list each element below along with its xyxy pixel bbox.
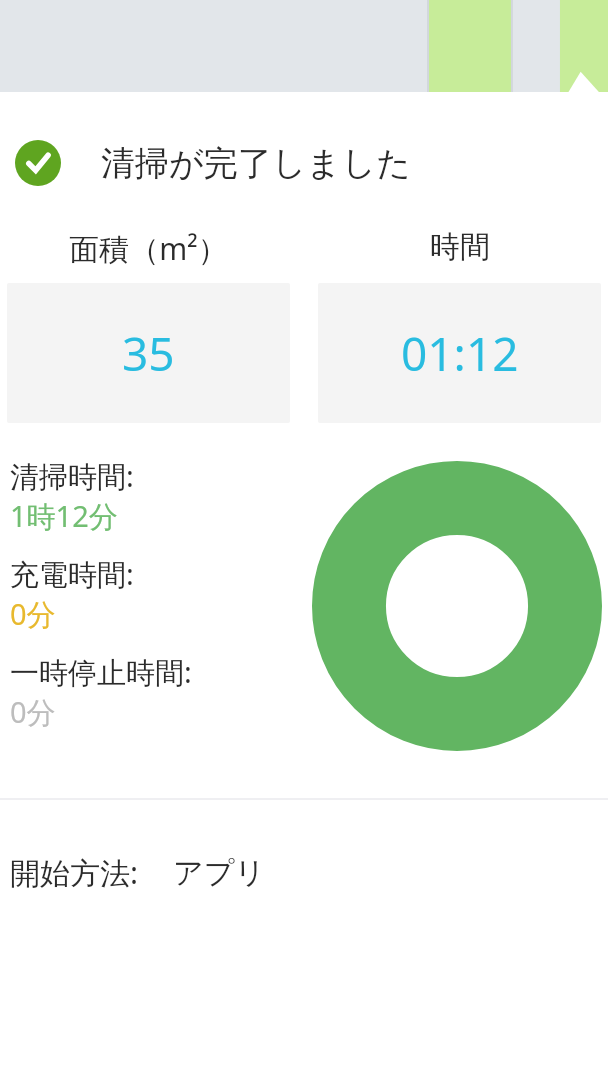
other: Cleaning complete [15,140,61,186]
button[interactable]: 01:12 [318,283,601,423]
staticText: アプリ [173,854,266,892]
staticText: 1時12分 [10,496,118,536]
staticText: 充電時間: [10,554,134,594]
staticText: 面積（m²） [69,228,228,269]
button[interactable]: 開始方法: [0,852,608,893]
button[interactable]: 35 [7,283,290,423]
staticText: 0分 [10,692,56,732]
staticText: 一時停止時間: [10,652,192,692]
staticText: 清掃時間: [10,456,134,496]
staticText: 35 [122,322,175,385]
staticText: 清掃が完了しました [101,142,411,185]
staticText: 01:12 [401,322,519,385]
staticText: 0分 [10,594,56,634]
staticText: 時間 [430,228,490,266]
button[interactable]: Cleaning complete [0,140,608,186]
staticText: 開始方法: [10,852,139,893]
